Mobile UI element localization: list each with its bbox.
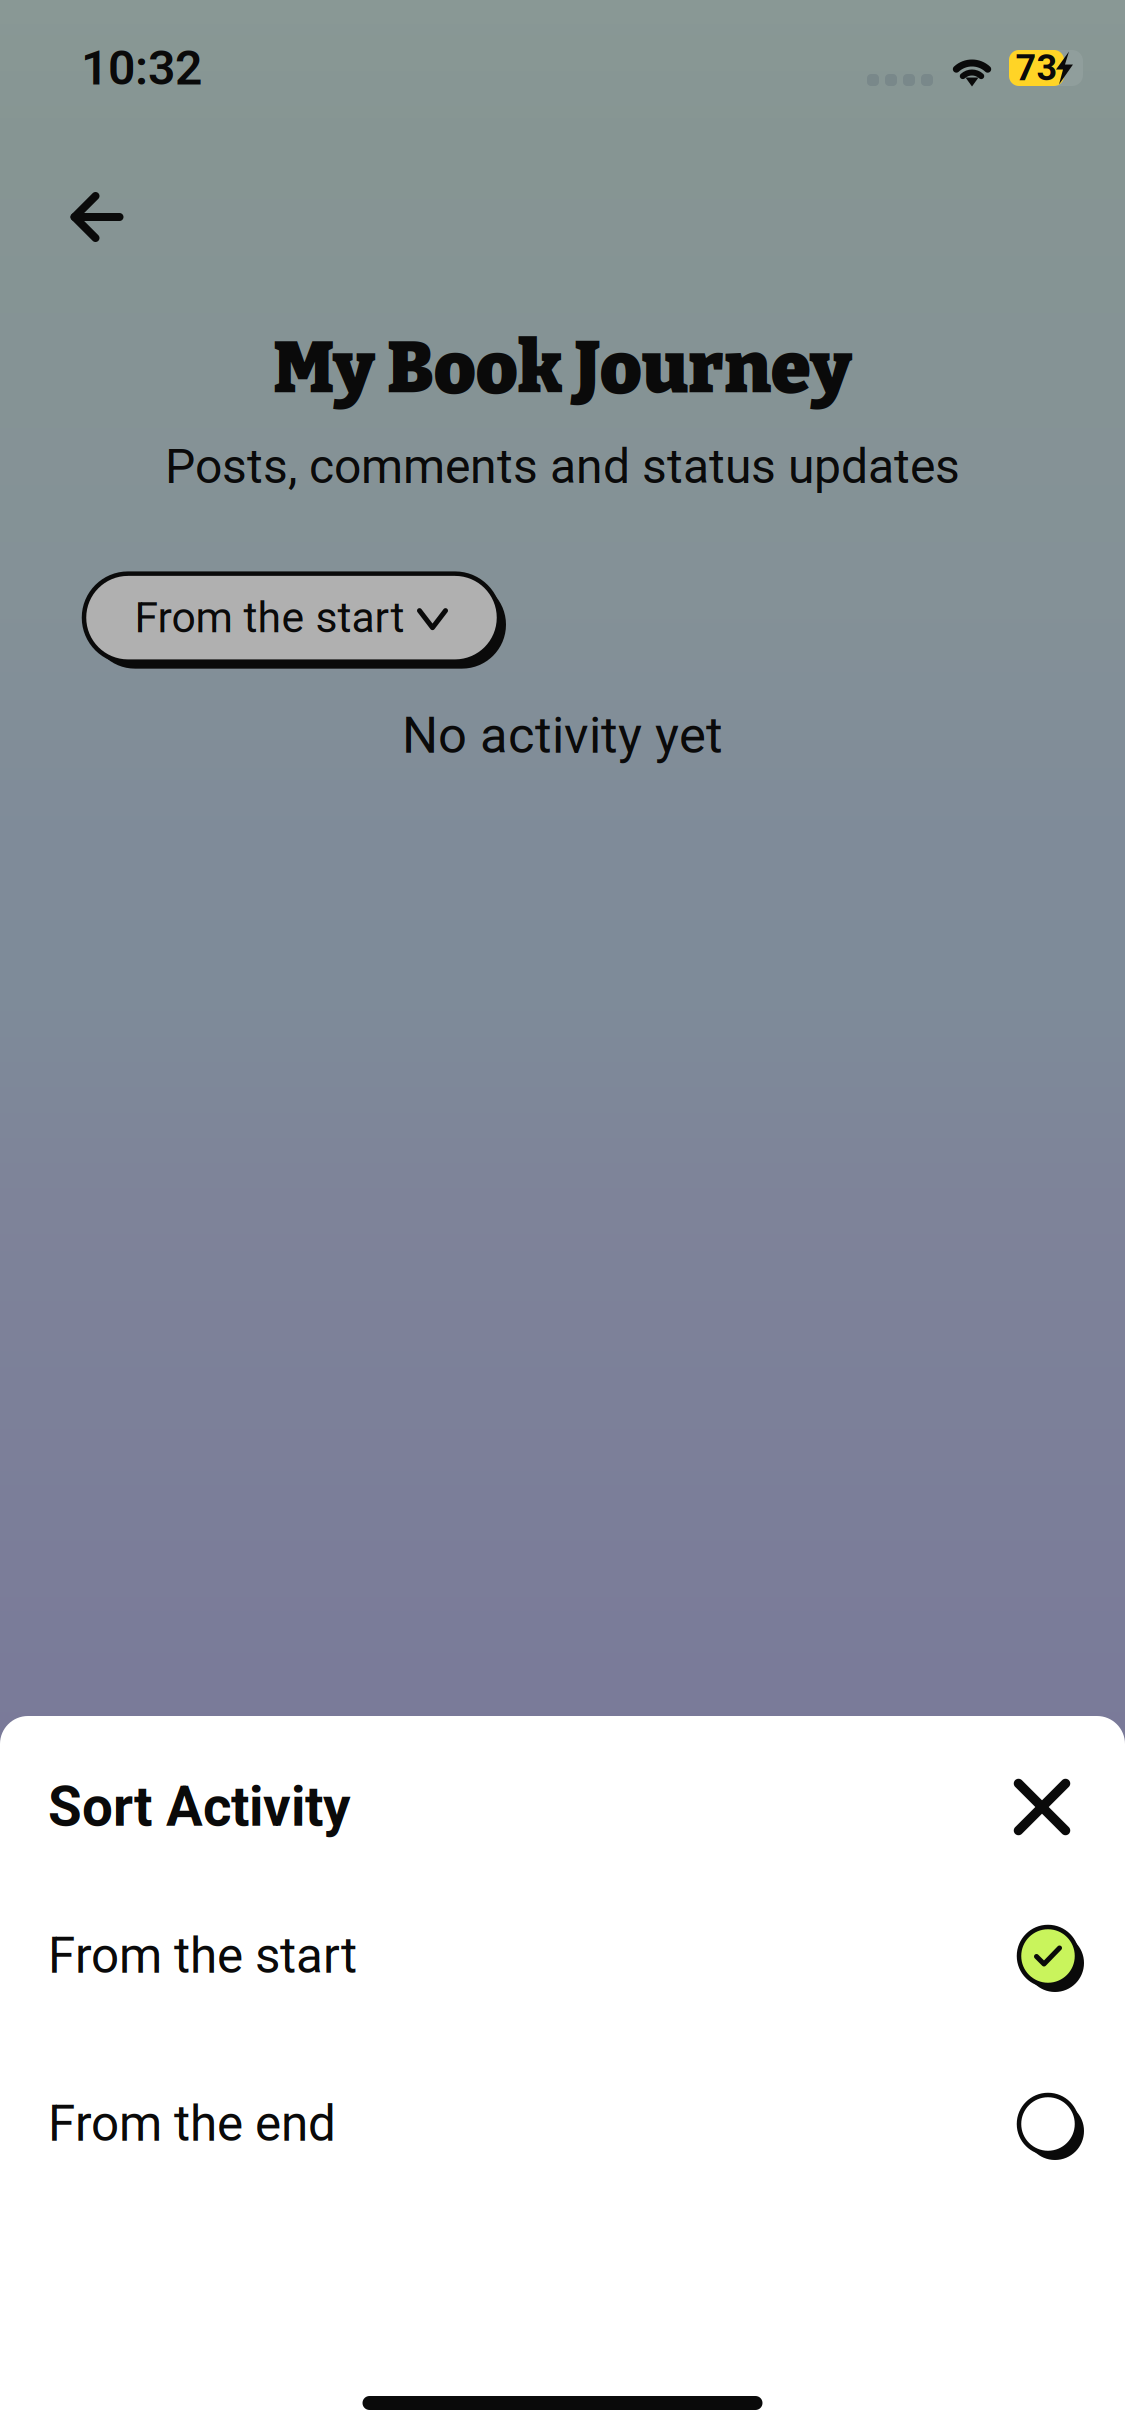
staticText: Posts, comments and status updates <box>165 438 960 495</box>
staticText: 10:32 <box>81 40 202 96</box>
staticText: From the end <box>48 2095 336 2153</box>
staticText: From the start <box>48 1927 357 1985</box>
button[interactable]: Close <box>998 1763 1086 1851</box>
button[interactable]: From the start <box>0 1898 1125 2014</box>
button[interactable]: Back <box>49 171 145 263</box>
staticText: No activity yet <box>402 706 723 765</box>
staticText: My Book Journey <box>273 325 852 411</box>
staticText: 73 <box>1015 47 1057 89</box>
staticText: Sort Activity <box>48 1775 351 1839</box>
button[interactable]: From the end <box>0 2066 1125 2182</box>
staticText: From the start <box>134 593 404 643</box>
button[interactable]: From the start <box>84 574 506 669</box>
